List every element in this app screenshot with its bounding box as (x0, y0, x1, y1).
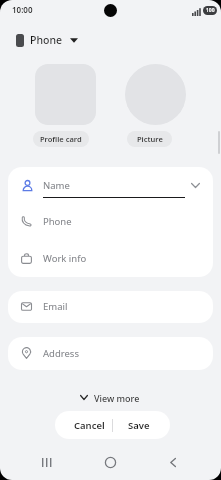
staticText: Phone (30, 33, 63, 47)
staticText: Phone (43, 215, 72, 228)
button[interactable]: Picture (127, 131, 172, 147)
button[interactable] (100, 452, 120, 472)
staticText: 10:00 (12, 4, 33, 15)
staticText: Profile card (40, 134, 82, 144)
staticText: Picture (137, 134, 163, 144)
staticText: Email (43, 300, 68, 313)
button[interactable]: Email (8, 291, 213, 323)
button[interactable] (163, 452, 183, 472)
staticText: Cancel (74, 419, 105, 432)
staticText: Name (43, 179, 70, 192)
button[interactable]: Name (8, 167, 213, 204)
button[interactable]: Cancel (67, 411, 112, 439)
staticText: Save (128, 419, 150, 432)
button[interactable]: Address (8, 337, 213, 370)
button[interactable]: Work info (8, 241, 213, 277)
button[interactable] (37, 452, 57, 472)
button[interactable]: Phone (16, 30, 78, 50)
staticText: 100 (206, 7, 215, 14)
staticText: Address (43, 347, 79, 360)
staticText: View more (94, 392, 140, 404)
button[interactable]: View more (80, 390, 140, 405)
button[interactable]: Save (113, 411, 165, 439)
button[interactable]: Profile card (33, 131, 89, 147)
button[interactable] (125, 64, 186, 125)
button[interactable]: Phone (8, 204, 213, 241)
staticText: Work info (43, 252, 87, 265)
